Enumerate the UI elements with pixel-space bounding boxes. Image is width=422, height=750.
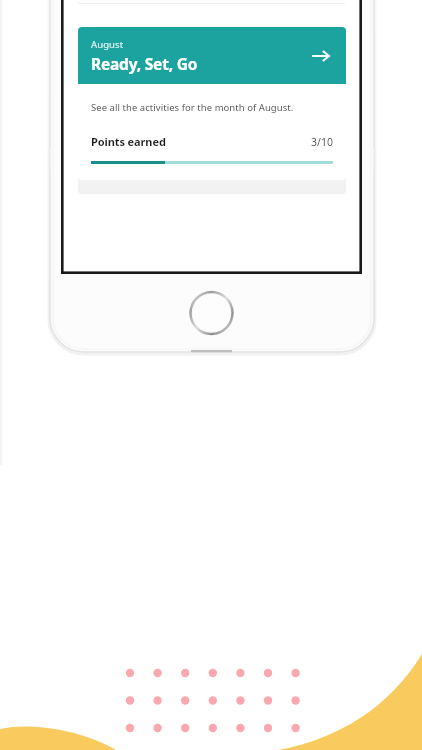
staticText: See all the activities for the month of …: [91, 101, 294, 114]
button[interactable]: August: [78, 27, 346, 84]
button[interactable]: Open August activities: [310, 45, 332, 67]
staticText: Ready, Set, Go: [91, 53, 198, 74]
button[interactable]: August: [78, 27, 346, 180]
staticText: Points earned: [91, 134, 166, 149]
staticText: August: [91, 38, 124, 51]
staticText: 3/10: [311, 135, 333, 149]
